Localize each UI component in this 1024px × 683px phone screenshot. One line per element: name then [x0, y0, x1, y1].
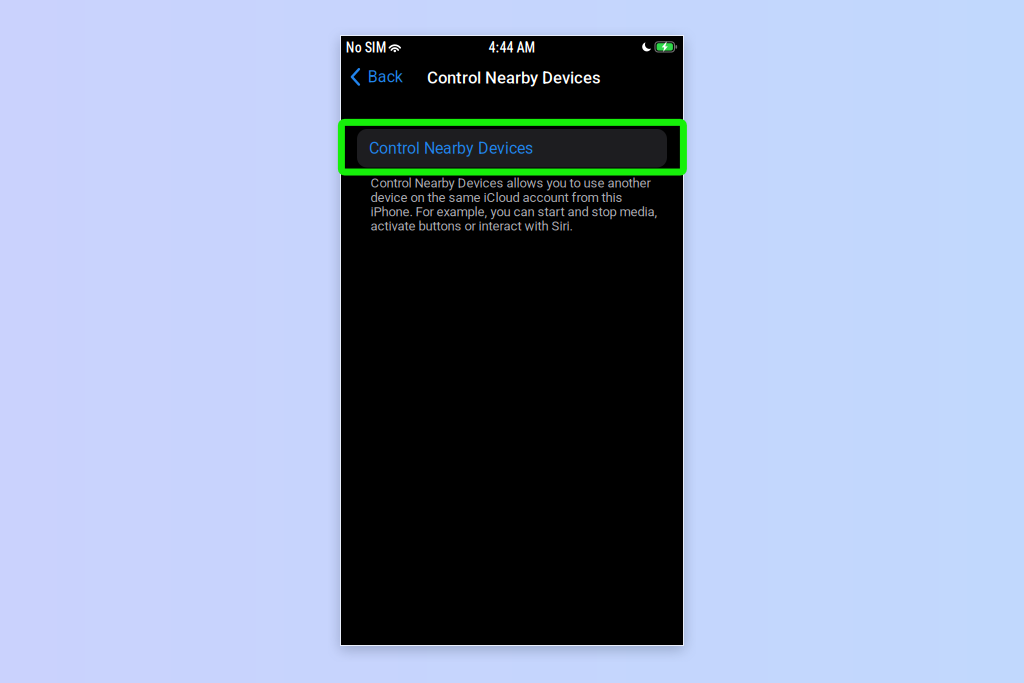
staticText: Back	[368, 67, 403, 86]
staticText: iPhone. For example, you can start and s…	[370, 204, 657, 219]
staticText: 4:44 AM	[488, 40, 535, 56]
staticText: device on the same iCloud account from t…	[370, 190, 622, 205]
staticText: Control Nearby Devices	[369, 139, 533, 158]
staticText: activate buttons or interact with Siri.	[370, 218, 572, 234]
button[interactable]: Control Nearby Devices	[357, 129, 667, 167]
staticText: Control Nearby Devices	[427, 68, 601, 87]
button[interactable]: Back	[348, 63, 405, 90]
staticText: No SIM	[346, 40, 387, 56]
staticText: Control Nearby Devices allows you to use…	[370, 175, 650, 191]
